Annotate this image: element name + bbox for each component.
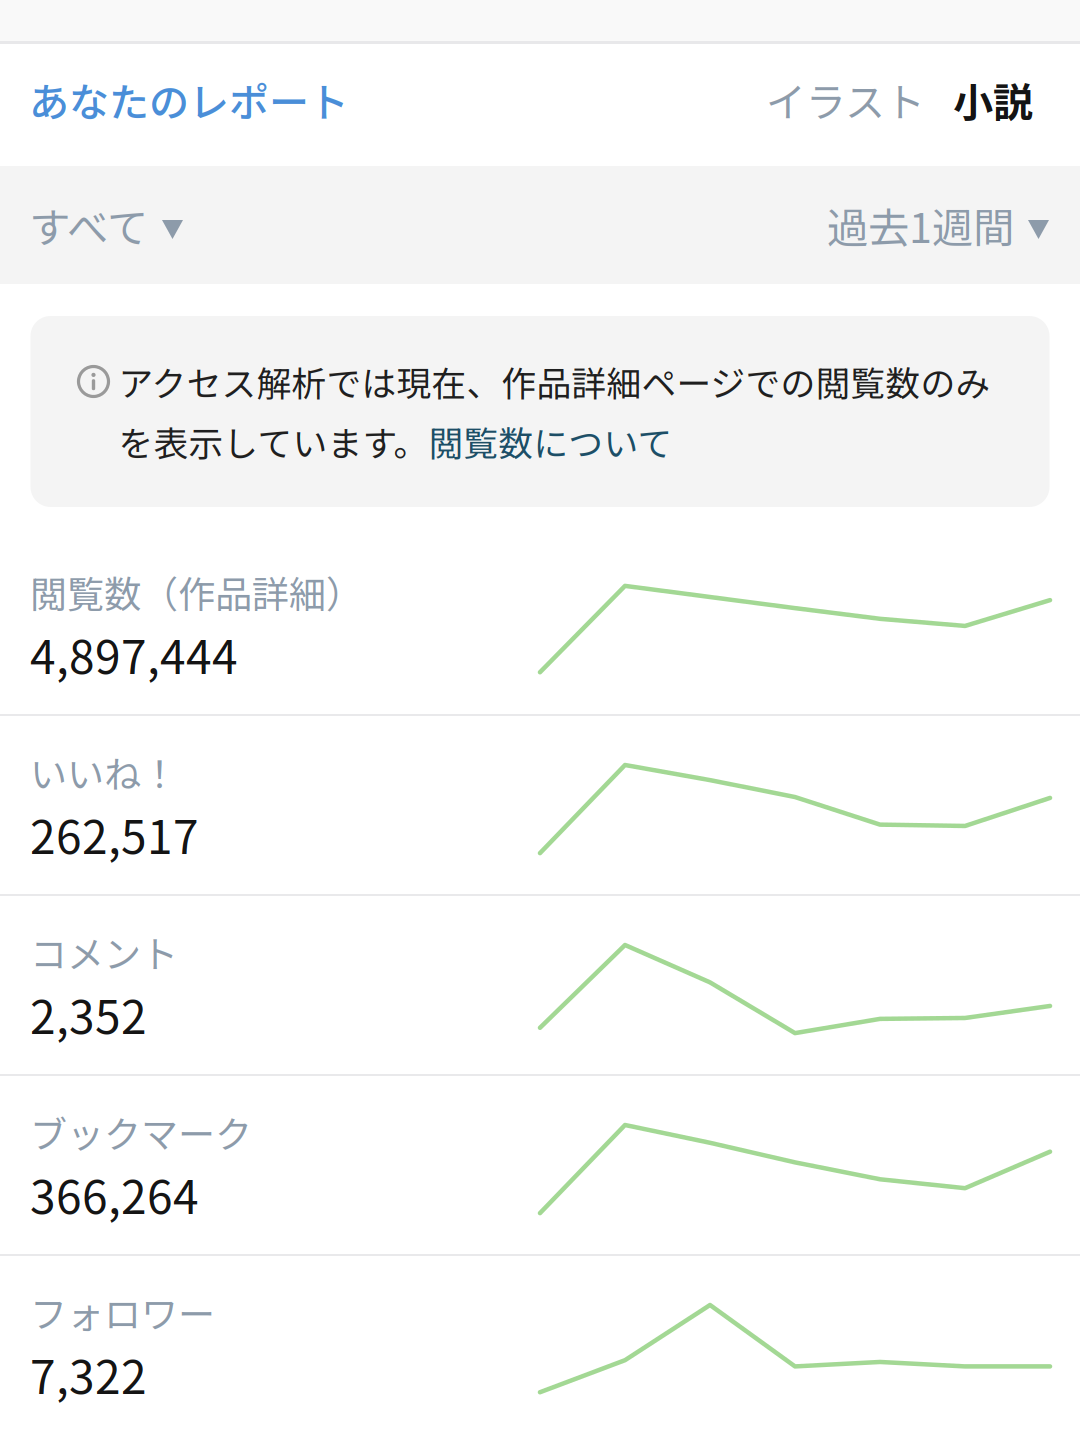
staticText: あなたのレポート bbox=[29, 70, 349, 128]
button[interactable]: あなたのレポート bbox=[29, 70, 349, 128]
staticText: コメント bbox=[30, 925, 178, 979]
staticText: 4,897,444 bbox=[30, 621, 238, 687]
button[interactable]: 小説 bbox=[953, 70, 1033, 128]
button[interactable]: 過去1週間 bbox=[827, 166, 1049, 284]
staticText: 閲覧数について bbox=[428, 416, 672, 467]
staticText: ブックマーク bbox=[30, 1105, 252, 1159]
button[interactable]: コメント bbox=[0, 896, 1080, 1074]
staticText: アクセス解析では現在、作品詳細ページでの閲覧数のみ bbox=[118, 356, 990, 407]
button[interactable]: イラスト bbox=[766, 70, 925, 128]
button[interactable]: ブックマーク bbox=[0, 1076, 1080, 1254]
button[interactable]: 閲覧数（作品詳細） bbox=[0, 536, 1080, 714]
staticText: 小説 bbox=[953, 70, 1033, 128]
staticText: 366,264 bbox=[30, 1161, 199, 1227]
staticText: すべて bbox=[29, 195, 148, 255]
staticText: 2,352 bbox=[30, 981, 147, 1047]
staticText: フォロワー bbox=[30, 1285, 215, 1339]
staticText: 閲覧数（作品詳細） bbox=[30, 565, 363, 619]
staticText: いいね！ bbox=[30, 745, 178, 799]
staticText: 262,517 bbox=[30, 801, 199, 867]
button[interactable]: いいね！ bbox=[0, 716, 1080, 894]
button[interactable]: すべて bbox=[29, 166, 183, 284]
staticText: イラスト bbox=[766, 70, 925, 128]
staticText: を表示しています。 bbox=[118, 416, 428, 467]
button[interactable]: フォロワー bbox=[0, 1256, 1080, 1434]
staticText: 過去1週間 bbox=[827, 195, 1014, 255]
staticText: 7,322 bbox=[30, 1341, 147, 1407]
